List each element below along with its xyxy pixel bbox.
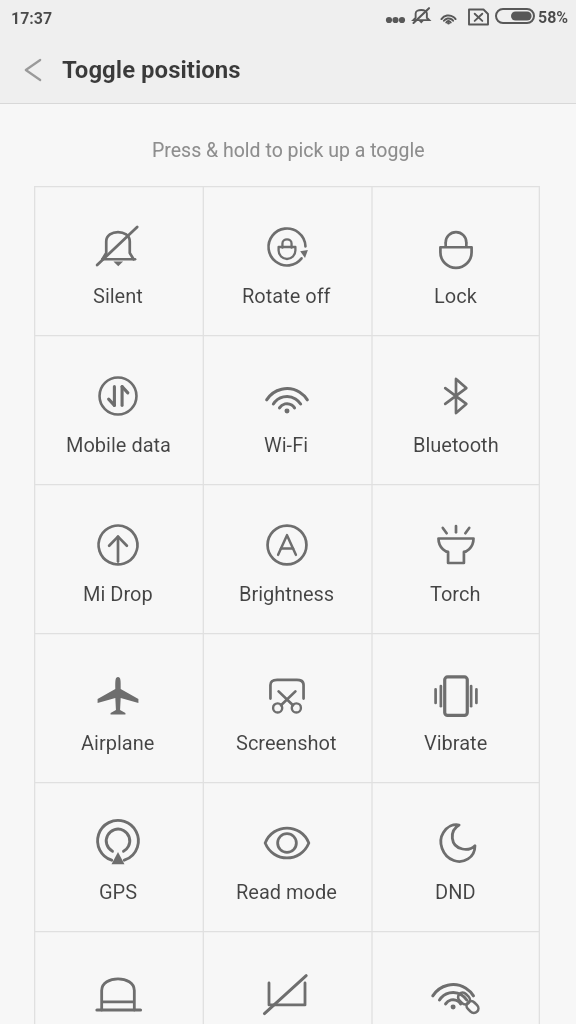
staticText: Airplane — [81, 731, 155, 754]
staticText: Torch — [430, 582, 481, 605]
staticText: Brightness — [239, 582, 335, 605]
button[interactable]: Silent — [34, 186, 202, 335]
button[interactable]: Torch — [371, 484, 540, 633]
button[interactable]: Mobile data — [34, 335, 202, 484]
staticText: GPS — [99, 880, 138, 903]
button[interactable]: Bluetooth — [371, 335, 540, 484]
staticText: Wi-Fi — [264, 433, 309, 456]
button[interactable]: Ringer — [34, 931, 202, 1024]
button[interactable]: DND — [371, 782, 540, 931]
staticText: Vibrate — [424, 731, 488, 754]
button[interactable]: Mi Drop — [34, 484, 202, 633]
staticText: Toggle positions — [62, 56, 241, 84]
staticText: Bluetooth — [413, 433, 499, 456]
button[interactable]: Vibrate — [371, 633, 540, 782]
button[interactable]: Airplane — [34, 633, 202, 782]
button[interactable]: Cast off — [202, 931, 371, 1024]
staticText: 58% — [538, 8, 569, 27]
staticText: Mi Drop — [83, 582, 153, 605]
button[interactable]: Wi-Fi — [202, 335, 371, 484]
button[interactable]: Brightness — [202, 484, 371, 633]
button[interactable]: Read mode — [202, 782, 371, 931]
button[interactable]: GPS — [34, 782, 202, 931]
staticText: Mobile data — [66, 433, 171, 456]
staticText: Lock — [434, 284, 477, 307]
staticText: 17:37 — [11, 9, 53, 28]
button[interactable]: Back — [0, 42, 56, 103]
staticText: Rotate off — [242, 284, 331, 307]
staticText: Silent — [93, 284, 143, 307]
staticText: DND — [435, 880, 476, 903]
staticText: Read mode — [236, 880, 337, 903]
button[interactable]: Lock — [371, 186, 540, 335]
button[interactable]: Hotspot — [371, 931, 540, 1024]
staticText: Screenshot — [236, 731, 337, 754]
button[interactable]: Rotate off — [202, 186, 371, 335]
staticText: Press & hold to pick up a toggle — [152, 139, 425, 162]
button[interactable]: Screenshot — [202, 633, 371, 782]
